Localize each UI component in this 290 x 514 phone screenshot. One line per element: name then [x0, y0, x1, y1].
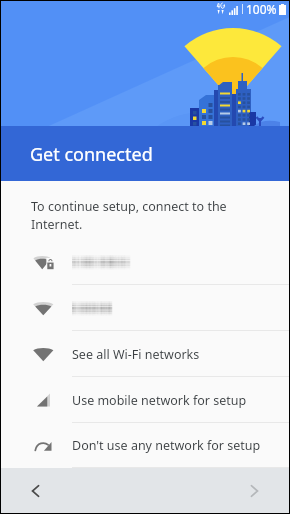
staticText: See all Wi-Fi networks	[72, 346, 200, 363]
staticText: Use mobile network for setup	[72, 392, 247, 409]
staticText: To continue setup, connect to the Intern…	[31, 198, 227, 233]
button[interactable]	[1, 239, 289, 285]
button[interactable]: Use mobile network for setup	[1, 377, 289, 423]
button[interactable]: Back	[25, 480, 47, 502]
button[interactable]: Don't use any network for setup	[1, 423, 289, 468]
button[interactable]: Next	[243, 480, 265, 502]
button[interactable]: See all Wi-Fi networks	[1, 331, 289, 377]
button[interactable]	[1, 285, 289, 331]
staticText: Get connected	[30, 142, 153, 167]
staticText: 100%	[246, 1, 277, 17]
staticText: Don't use any network for setup	[72, 437, 261, 454]
